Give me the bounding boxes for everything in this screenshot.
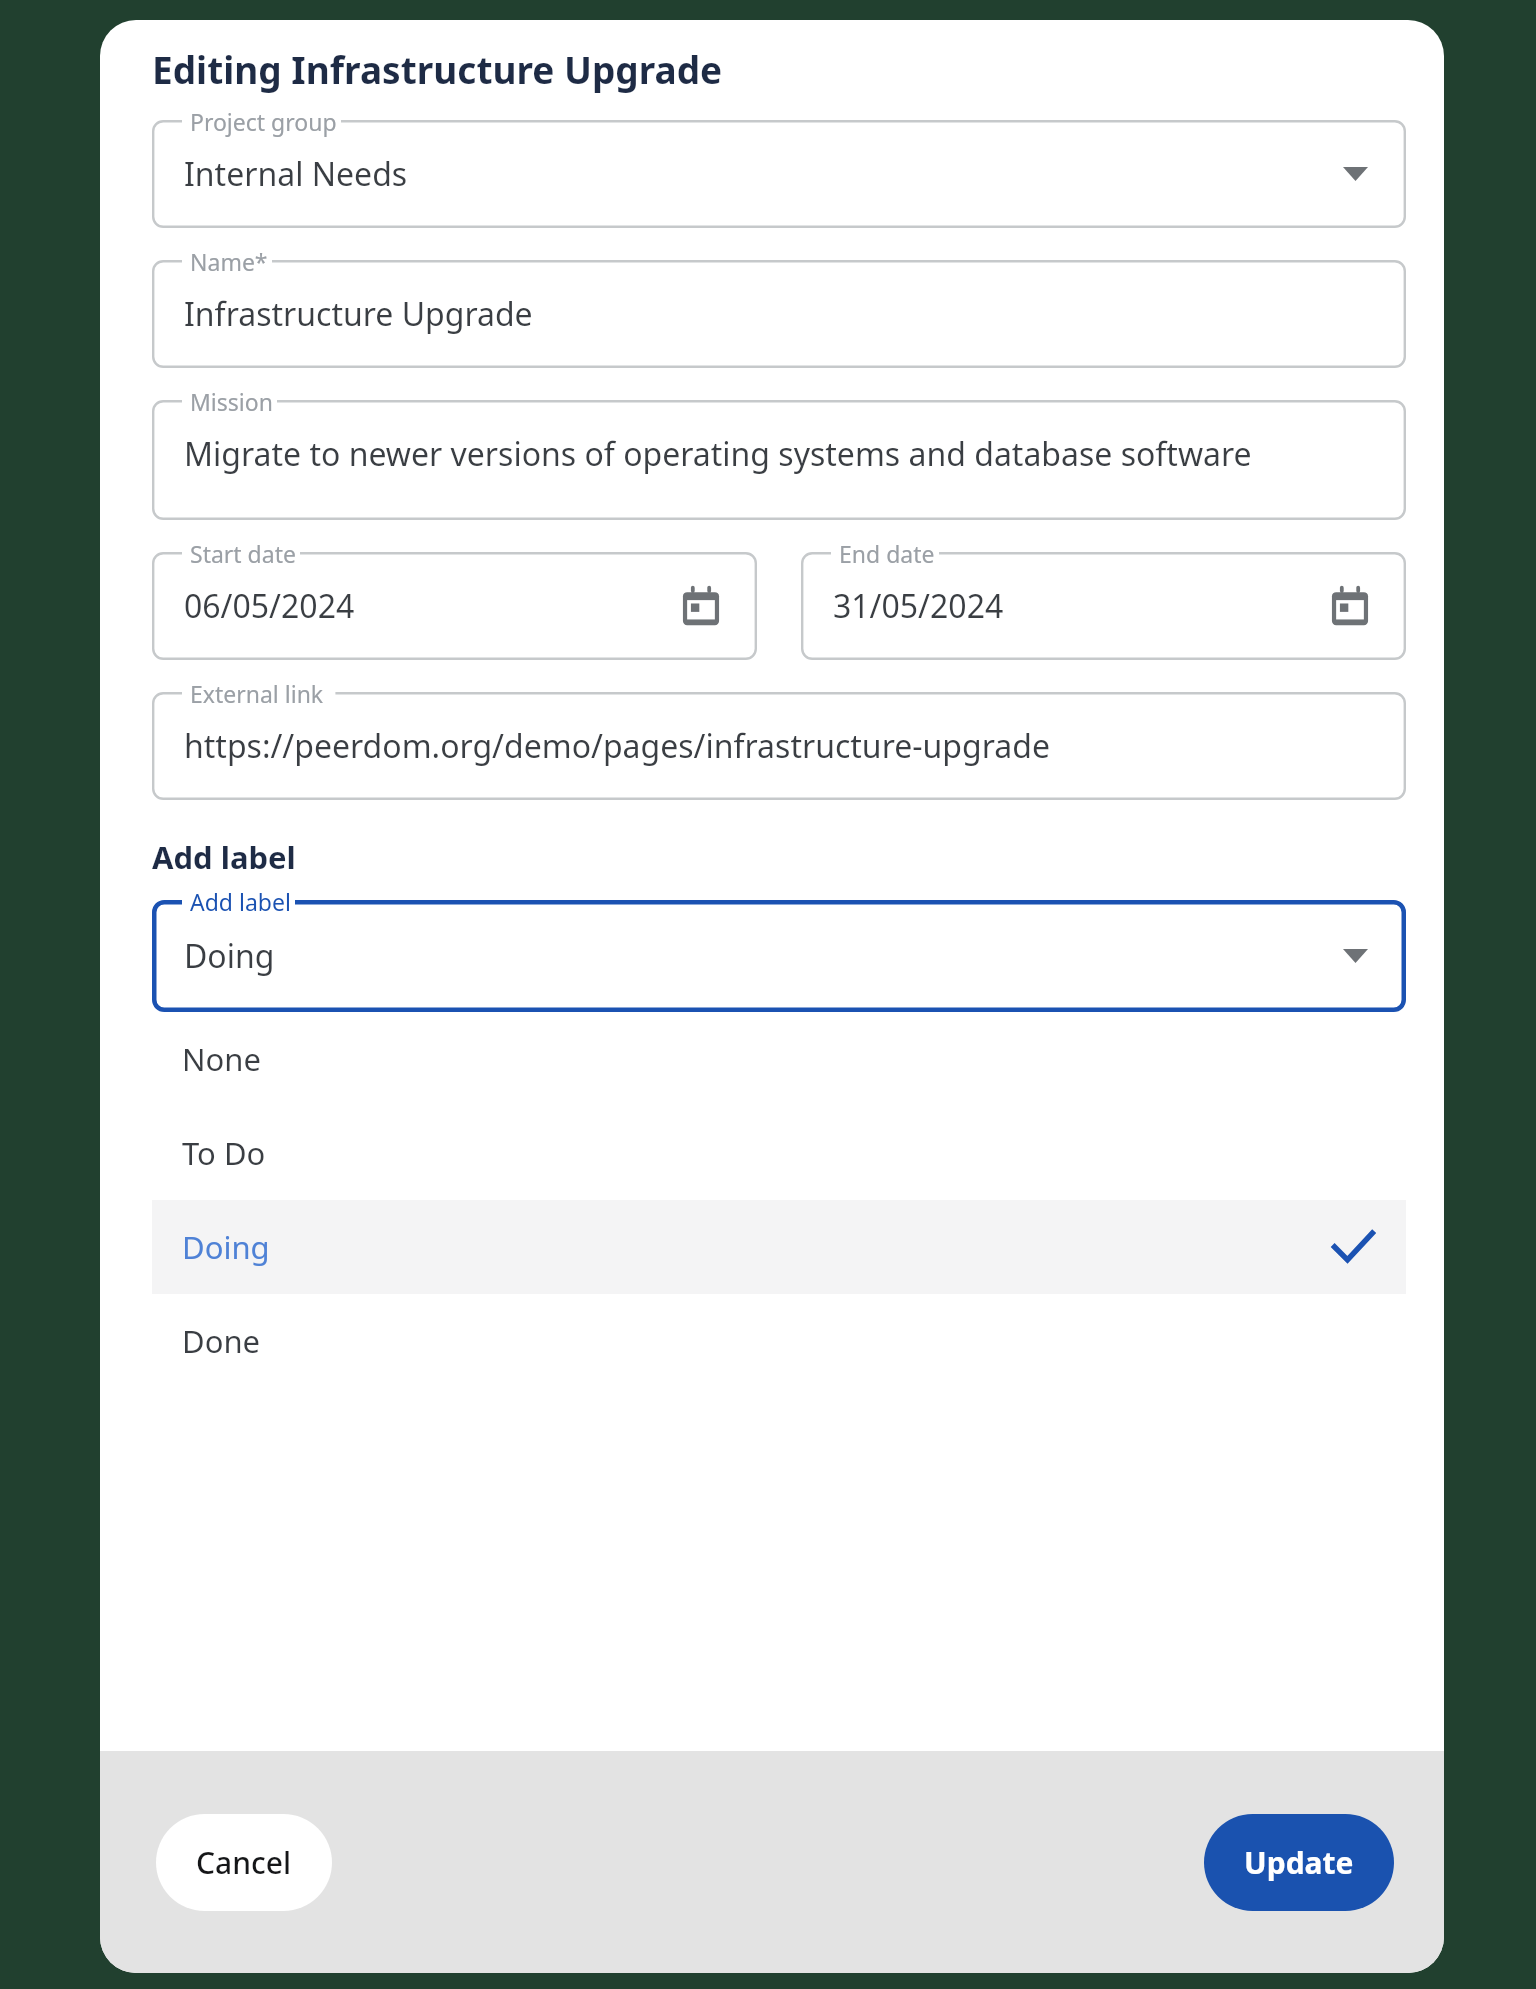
button[interactable]: Done — [152, 1294, 1406, 1388]
button[interactable]: None — [152, 1012, 1406, 1106]
staticText: Start date — [190, 538, 296, 569]
staticText: None — [182, 1038, 261, 1080]
staticText: Doing — [184, 934, 275, 978]
staticText: End date — [839, 538, 935, 569]
button[interactable]: Open dropdown — [1330, 149, 1380, 199]
staticText: Name* — [190, 246, 268, 277]
staticText: 31/05/2024 — [833, 584, 1004, 628]
button[interactable]: Mission — [152, 400, 1406, 520]
staticText: Doing — [182, 1226, 270, 1268]
staticText: Infrastructure Upgrade — [184, 292, 533, 336]
button[interactable]: Pick date — [1322, 578, 1378, 634]
staticText: Add label — [152, 836, 296, 878]
staticText: 06/05/2024 — [184, 584, 355, 628]
staticText: To Do — [182, 1132, 266, 1174]
button[interactable]: Add label — [152, 900, 1406, 1012]
button[interactable]: External link — [152, 692, 1406, 800]
button[interactable]: Name* — [152, 260, 1406, 368]
button[interactable]: Open dropdown — [1330, 931, 1380, 981]
button[interactable]: Pick date — [673, 578, 729, 634]
button[interactable]: Start date — [152, 552, 757, 660]
staticText: Update — [1244, 1842, 1354, 1883]
staticText: Mission — [190, 386, 273, 417]
button[interactable]: Doing — [152, 1200, 1406, 1294]
button[interactable]: Update — [1204, 1814, 1394, 1911]
button[interactable]: Project group — [152, 120, 1406, 228]
staticText: Done — [182, 1320, 261, 1362]
staticText: Migrate to newer versions of operating s… — [184, 432, 1252, 476]
staticText: Editing Infrastructure Upgrade — [152, 44, 723, 94]
button[interactable]: Cancel — [156, 1814, 332, 1911]
staticText: Project group — [190, 106, 337, 137]
button[interactable]: To Do — [152, 1106, 1406, 1200]
staticText: External link — [190, 678, 324, 709]
staticText: Internal Needs — [184, 152, 408, 196]
staticText: https://peerdom.org/demo/pages/infrastru… — [184, 724, 1050, 768]
staticText: Add label — [190, 886, 291, 917]
button[interactable]: End date — [801, 552, 1406, 660]
staticText: Cancel — [196, 1842, 292, 1883]
